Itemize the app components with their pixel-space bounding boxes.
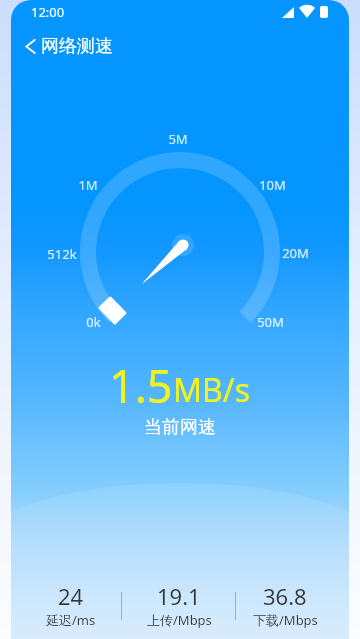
staticText: MB/s	[173, 368, 251, 412]
staticText: 下载/Mbps	[253, 611, 318, 629]
staticText: 19.1	[157, 581, 201, 611]
staticText: 网络测速	[41, 35, 113, 58]
staticText: 512k	[47, 245, 77, 263]
staticText: 上传/Mbps	[147, 611, 212, 629]
staticText: 0k	[86, 313, 101, 331]
staticText: 5M	[168, 130, 188, 148]
staticText: 延迟/ms	[46, 611, 96, 629]
staticText: 36.8	[263, 581, 307, 611]
staticText: 50M	[257, 313, 284, 331]
button[interactable]: 36.8	[229, 581, 341, 629]
staticText: 24	[58, 581, 84, 611]
staticText: 10M	[259, 176, 286, 194]
button[interactable]: 19.1	[123, 581, 235, 629]
button[interactable]: Back	[11, 31, 41, 61]
button[interactable]: 24	[15, 581, 127, 629]
staticText: 20M	[282, 244, 309, 262]
staticText: 1M	[78, 176, 98, 194]
staticText: 12:00	[31, 3, 65, 21]
staticText: 当前网速	[144, 416, 216, 439]
staticText: 1.5	[109, 355, 173, 416]
